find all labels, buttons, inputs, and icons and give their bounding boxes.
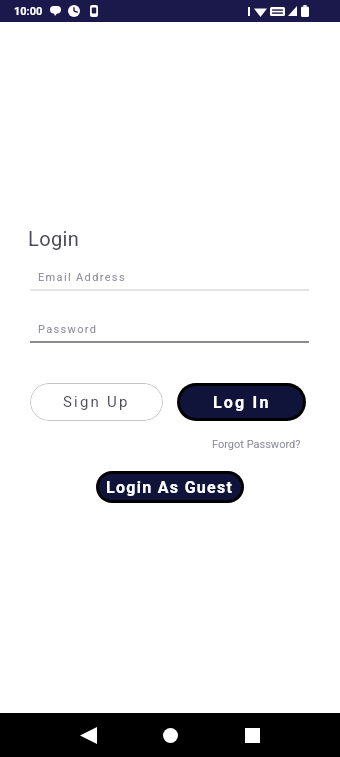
staticText: 10:00 (14, 5, 43, 18)
button[interactable]: Forgot Password? (212, 438, 301, 451)
staticText: Log In (213, 393, 271, 412)
staticText: Email Address (38, 271, 126, 284)
button[interactable]: Log In (180, 386, 303, 418)
staticText: Login (28, 227, 80, 250)
button[interactable]: Recent apps (216, 713, 288, 757)
button[interactable]: Home (134, 713, 206, 757)
staticText: Sign Up (63, 393, 130, 411)
button[interactable]: Back (52, 713, 124, 757)
staticText: Login As Guest (106, 478, 234, 497)
button[interactable]: Sign Up (30, 383, 163, 421)
button[interactable]: Login As Guest (99, 474, 241, 500)
staticText: Password (38, 323, 98, 336)
